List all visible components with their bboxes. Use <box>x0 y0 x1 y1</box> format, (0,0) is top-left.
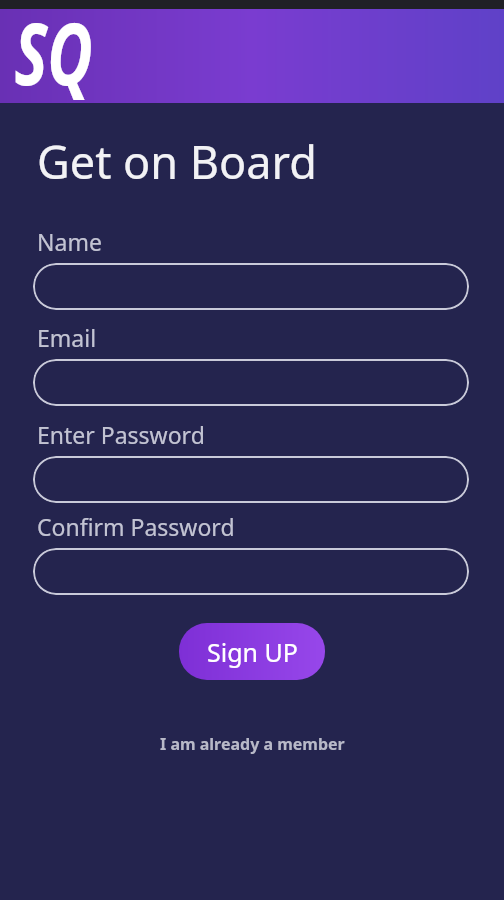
staticText: Name <box>37 226 102 257</box>
staticText: Email <box>37 322 97 353</box>
button[interactable] <box>33 548 469 595</box>
button[interactable]: I am already a member <box>160 733 345 755</box>
button[interactable]: Sign UP <box>179 623 325 680</box>
button[interactable] <box>33 263 469 310</box>
button[interactable] <box>33 456 469 503</box>
staticText: Enter Password <box>37 419 205 450</box>
button[interactable] <box>33 359 469 406</box>
staticText: Confirm Password <box>37 511 235 542</box>
staticText: Sign UP <box>207 635 298 669</box>
staticText: Get on Board <box>37 131 317 192</box>
staticText: SQ <box>14 0 94 110</box>
